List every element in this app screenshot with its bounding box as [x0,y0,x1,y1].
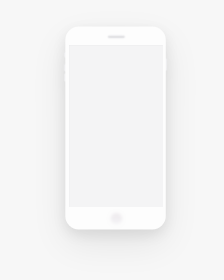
button[interactable]: Home [111,213,123,225]
